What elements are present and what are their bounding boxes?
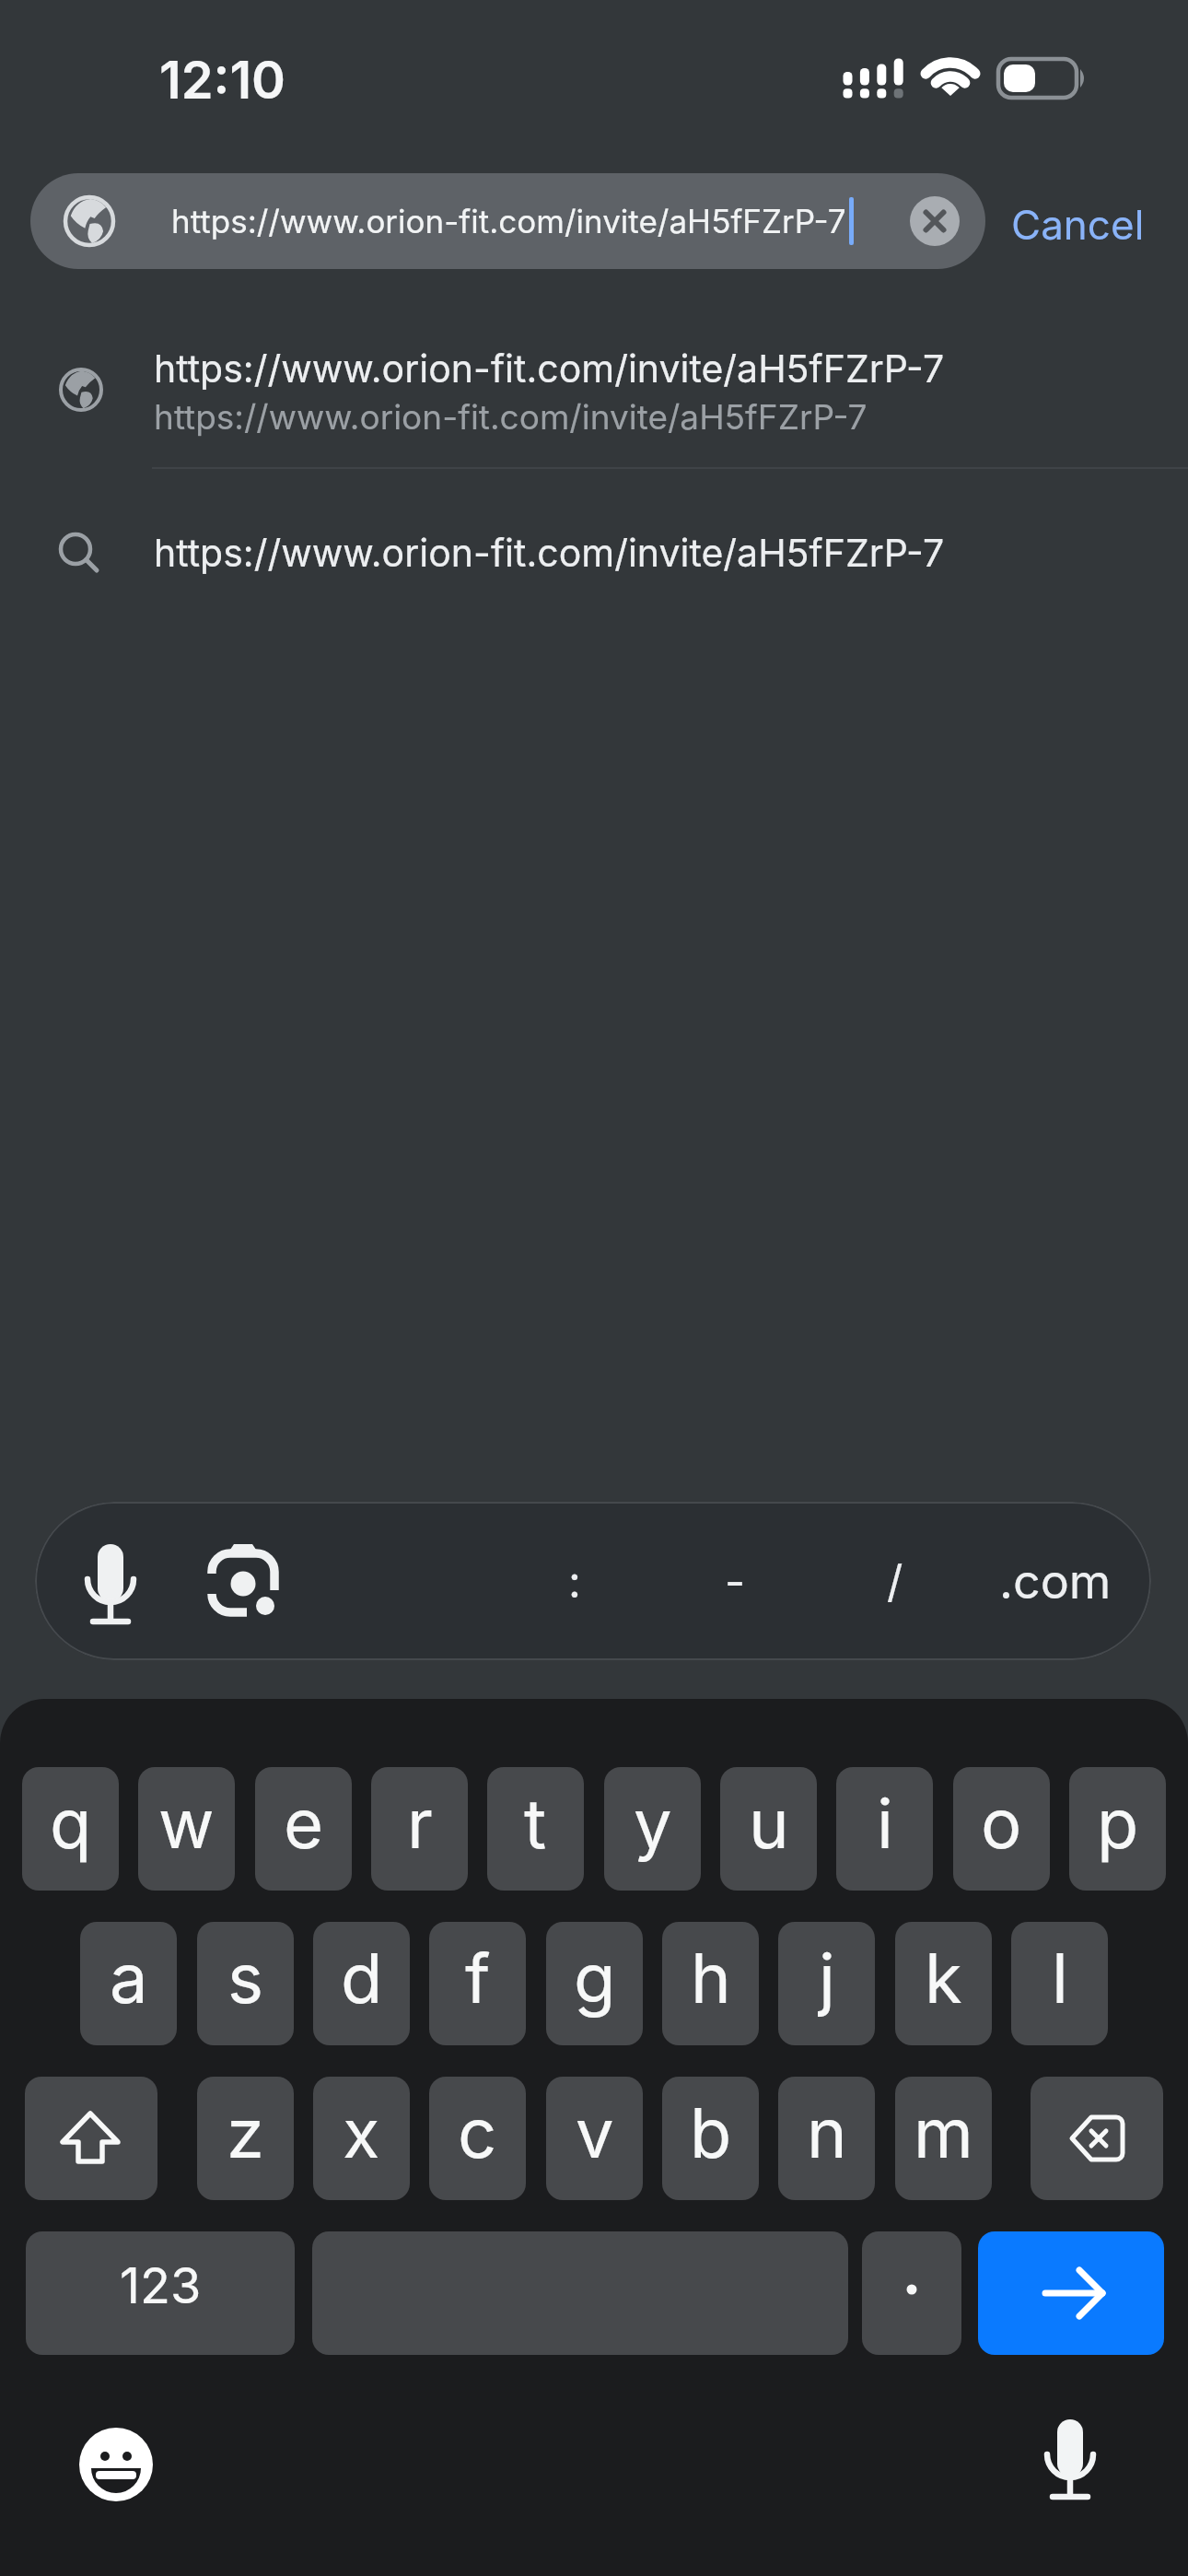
button[interactable]: : xyxy=(542,1540,607,1622)
button[interactable]: g xyxy=(546,1922,643,2045)
staticText: l xyxy=(1052,1937,1068,2020)
staticText: i xyxy=(877,1782,893,1865)
staticText: https://www.orion-fit.com/invite/aH5fFZr… xyxy=(154,396,868,438)
button[interactable]: c xyxy=(429,2077,526,2200)
button[interactable]: u xyxy=(720,1767,817,1891)
button[interactable] xyxy=(862,2231,961,2355)
staticText: b xyxy=(690,2091,732,2174)
staticText: d xyxy=(341,1937,383,2020)
button[interactable]: m xyxy=(895,2077,992,2200)
staticText: Cancel xyxy=(1011,200,1145,249)
button[interactable]: f xyxy=(429,1922,526,2045)
staticText: v xyxy=(576,2091,614,2174)
button[interactable] xyxy=(1031,2077,1163,2200)
button[interactable] xyxy=(70,2418,162,2511)
staticText: n xyxy=(807,2091,847,2174)
staticText: c xyxy=(458,2091,497,2174)
button[interactable] xyxy=(1024,2405,1116,2515)
staticText: y xyxy=(634,1782,672,1865)
button[interactable]: x xyxy=(313,2077,410,2200)
button[interactable]: i xyxy=(836,1767,933,1891)
button[interactable]: j xyxy=(778,1922,875,2045)
button[interactable]: / xyxy=(863,1540,927,1622)
button[interactable] xyxy=(978,2231,1164,2355)
button[interactable]: q xyxy=(22,1767,119,1891)
staticText: u xyxy=(749,1782,789,1865)
staticText: k xyxy=(925,1937,962,2020)
staticText: e xyxy=(284,1782,324,1865)
button[interactable]: s xyxy=(197,1922,294,2045)
staticText: t xyxy=(524,1782,547,1865)
staticText: f xyxy=(465,1937,491,2020)
staticText: 123 xyxy=(120,2255,202,2315)
staticText: x xyxy=(343,2091,380,2174)
button[interactable]: o xyxy=(953,1767,1050,1891)
button[interactable]: v xyxy=(546,2077,643,2200)
staticText: / xyxy=(887,1554,903,1608)
button[interactable]: b xyxy=(662,2077,759,2200)
button[interactable]: - xyxy=(703,1540,767,1622)
staticText: a xyxy=(110,1937,148,2020)
staticText: - xyxy=(725,1554,746,1608)
staticText: r xyxy=(407,1782,433,1865)
button[interactable]: https://www.orion-fit.com/invite/aH5fFZr… xyxy=(0,488,1188,617)
button[interactable]: w xyxy=(138,1767,235,1891)
button[interactable]: l xyxy=(1011,1922,1108,2045)
button[interactable]: e xyxy=(255,1767,352,1891)
button[interactable]: Cancel xyxy=(999,187,1156,261)
staticText: o xyxy=(981,1782,1022,1865)
staticText: 12:10 xyxy=(159,49,286,111)
staticText: https://www.orion-fit.com/invite/aH5fFZr… xyxy=(154,345,945,392)
staticText: w xyxy=(158,1782,215,1865)
staticText: p xyxy=(1097,1782,1139,1865)
staticText: : xyxy=(568,1554,581,1608)
button[interactable]: k xyxy=(895,1922,992,2045)
button[interactable] xyxy=(64,1526,157,1636)
button[interactable]: n xyxy=(778,2077,875,2200)
staticText: https://www.orion-fit.com/invite/aH5fFZr… xyxy=(171,202,846,240)
button[interactable] xyxy=(25,2077,157,2200)
button[interactable]: d xyxy=(313,1922,410,2045)
staticText: h xyxy=(691,1937,731,2020)
staticText: q xyxy=(50,1782,92,1865)
button[interactable]: https://www.orion-fit.com/invite/aH5fFZr… xyxy=(30,173,985,269)
staticText: j xyxy=(819,1937,835,2020)
button[interactable]: z xyxy=(197,2077,294,2200)
button[interactable]: a xyxy=(80,1922,177,2045)
staticText: z xyxy=(227,2091,264,2174)
button[interactable] xyxy=(312,2231,848,2355)
staticText: s xyxy=(227,1937,264,2020)
button[interactable]: p xyxy=(1069,1767,1166,1891)
button[interactable]: y xyxy=(604,1767,701,1891)
staticText: .com xyxy=(999,1552,1112,1610)
button[interactable] xyxy=(197,1526,289,1636)
button[interactable]: h xyxy=(662,1922,759,2045)
staticText: https://www.orion-fit.com/invite/aH5fFZr… xyxy=(154,530,945,576)
button[interactable]: r xyxy=(371,1767,468,1891)
button[interactable]: .com xyxy=(991,1540,1120,1622)
button[interactable]: t xyxy=(487,1767,584,1891)
button[interactable]: 123 xyxy=(26,2231,295,2355)
button[interactable]: https://www.orion-fit.com/invite/aH5fFZr… xyxy=(0,324,1188,464)
staticText: g xyxy=(574,1937,616,2020)
staticText: m xyxy=(914,2091,973,2174)
